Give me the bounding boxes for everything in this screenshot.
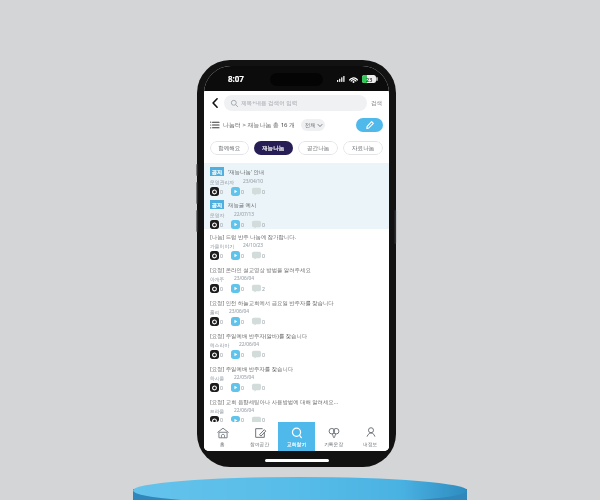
staticText: 0 (241, 351, 244, 358)
staticText: 24/10/23 (243, 242, 264, 249)
button[interactable]: 전체 (301, 119, 325, 131)
staticText: 아개주 (210, 276, 225, 282)
button[interactable]: 제목+내용 검색어 입력 (224, 95, 367, 111)
staticText: 0 (220, 351, 223, 358)
staticText: 0 (241, 384, 244, 391)
staticText: [요청] 인천 하늘교회에서 금요일 반주자를 찾습니다 (210, 299, 334, 306)
staticText: [요청] 온라인 설교영상 방법을 알려주세요 (210, 266, 311, 273)
staticText: 교회찾기 (287, 441, 307, 447)
staticText: 하시올 (210, 375, 225, 381)
staticText: 0 (220, 416, 223, 422)
button[interactable]: 함께해요 (210, 141, 249, 155)
staticText: 재능글 예시 (228, 201, 257, 208)
staticText: 재능나눔 (262, 145, 285, 152)
staticText: 참여공간 (250, 441, 270, 447)
staticText: 0 (241, 221, 244, 228)
staticText: 0 (241, 416, 244, 422)
staticText: 홀리 (210, 309, 220, 315)
staticText: 23/06/04 (229, 308, 250, 315)
staticText: 22/05/04 (234, 374, 255, 381)
staticText: 자료나눔 (352, 145, 375, 152)
staticText: 22/06/04 (234, 407, 255, 414)
staticText: 0 (262, 188, 265, 195)
staticText: 홈 (220, 441, 225, 447)
staticText: 공지 (212, 202, 222, 208)
button[interactable]: 기록운장 (315, 422, 352, 451)
staticText: 운영관리자 (210, 179, 234, 185)
staticText: 에스라마 (210, 342, 230, 348)
staticText: 나눔터 > 재능나눔 총 16 개 (223, 121, 296, 129)
staticText: 8:07 (228, 73, 244, 84)
button[interactable]: 검색 (370, 100, 384, 107)
staticText: 검색 (371, 100, 383, 107)
staticText: 0 (241, 252, 244, 259)
button[interactable]: [요청] 주일예배 반주자를 찾습니다 (204, 361, 389, 394)
staticText: 0 (262, 384, 265, 391)
staticText: 함께해요 (218, 145, 241, 152)
staticText: 0 (220, 252, 223, 259)
staticText: 0 (262, 416, 265, 422)
staticText: '재능나눔' 안내 (228, 168, 265, 175)
button[interactable]: [요청] 인천 하늘교회에서 금요일 반주자를 찾습니다 (204, 295, 389, 328)
button[interactable]: 내정보 (352, 422, 389, 451)
button[interactable]: [나눔] 드럼 반주 나눔에 참가합니다. (204, 229, 389, 262)
button[interactable]: 교회찾기 (278, 422, 315, 451)
button[interactable]: 공지 (204, 196, 389, 229)
staticText: 0 (241, 188, 244, 195)
staticText: 공간나눔 (307, 145, 330, 152)
button[interactable]: 공지 (204, 163, 389, 196)
staticText: 22/07/13 (234, 211, 255, 218)
staticText: [나눔] 드럼 반주 나눔에 참가합니다. (210, 233, 297, 240)
button[interactable]: [요청] 주일예배 반주자(알바)를 찾습니다 (204, 328, 389, 361)
button[interactable]: [요청] 온라인 설교영상 방법을 알려주세요 (204, 262, 389, 295)
staticText: 프라울 (210, 408, 225, 414)
staticText: 가을이야기 (210, 243, 234, 249)
staticText: 전체 (305, 122, 316, 129)
staticText: 기록운장 (324, 441, 344, 447)
staticText: 0 (262, 351, 265, 358)
staticText: 0 (220, 285, 223, 292)
button[interactable]: List view (210, 121, 219, 129)
staticText: 제목+내용 검색어 입력 (241, 99, 298, 107)
staticText: 내정보 (363, 441, 378, 447)
staticText: 0 (241, 318, 244, 325)
staticText: 0 (220, 318, 223, 325)
button[interactable]: [요청] 교회 음향세팅아나 사용방법에 대해 알려세요... (204, 394, 389, 422)
staticText: 23 (366, 76, 373, 83)
button[interactable]: 자료나눔 (343, 141, 383, 155)
button[interactable]: Back (208, 93, 222, 113)
staticText: [요청] 주일예배 반주자(알바)를 찾습니다 (210, 332, 308, 339)
staticText: 23/06/04 (234, 275, 255, 282)
staticText: 공지 (212, 169, 222, 175)
button[interactable]: Write post (356, 118, 383, 132)
staticText: 0 (220, 221, 223, 228)
staticText: 0 (262, 318, 265, 325)
staticText: 2 (262, 285, 265, 292)
staticText: 22/06/04 (239, 341, 260, 348)
button[interactable]: 홈 (204, 422, 241, 451)
staticText: 0 (241, 285, 244, 292)
staticText: [요청] 주일예배 반주자를 찾습니다 (210, 365, 294, 372)
button[interactable]: 공간나눔 (298, 141, 338, 155)
staticText: 0 (262, 252, 265, 259)
button[interactable]: 참여공간 (241, 422, 278, 451)
staticText: 0 (220, 384, 223, 391)
staticText: 0 (262, 221, 265, 228)
button[interactable]: 재능나눔 (254, 141, 293, 155)
staticText: 23/04/10 (243, 178, 264, 185)
staticText: [요청] 교회 음향세팅아나 사용방법에 대해 알려세요... (210, 398, 339, 405)
staticText: 0 (220, 188, 223, 195)
staticText: 운영자 (210, 212, 225, 218)
